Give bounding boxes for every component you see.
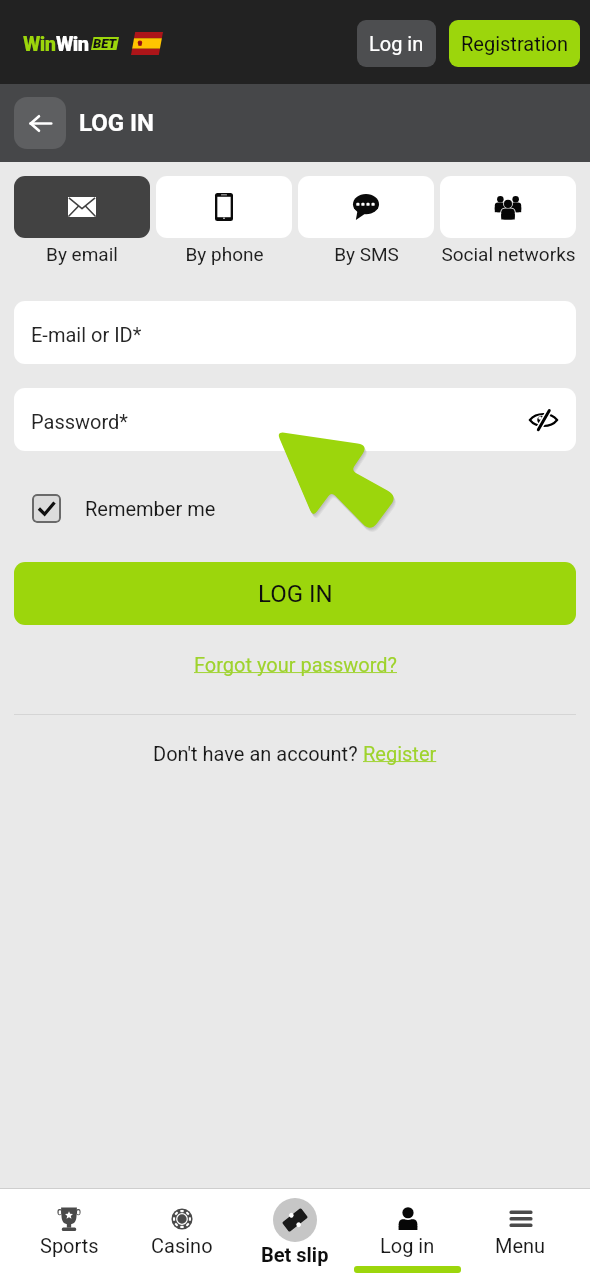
button[interactable]: By phone [156, 176, 292, 265]
button[interactable]: E-mail or ID* [14, 301, 576, 364]
button[interactable]: Forgot your password? [188, 651, 403, 678]
button[interactable]: Password* [14, 388, 576, 451]
staticText: LOG IN [79, 109, 155, 137]
staticText: Win [23, 32, 56, 55]
staticText: Sports [40, 1234, 99, 1257]
button[interactable]: By SMS [298, 176, 434, 265]
staticText: Casino [151, 1234, 213, 1257]
staticText: BET [93, 36, 117, 51]
staticText: Forgot your password? [194, 653, 397, 676]
staticText: Register [363, 742, 437, 765]
button[interactable]: Menu [464, 1189, 577, 1280]
button[interactable]: Log in [351, 1189, 464, 1280]
button[interactable]: By email [14, 176, 150, 265]
button[interactable]: LOG IN [14, 562, 576, 625]
button[interactable]: Show password [526, 403, 560, 437]
staticText: By phone [185, 243, 264, 265]
staticText: Don't have an account? [153, 742, 363, 765]
staticText: Password* [31, 410, 128, 433]
button[interactable]: Log in [357, 20, 436, 67]
staticText: Bet slip [261, 1243, 329, 1266]
staticText: E-mail or ID* [31, 323, 142, 346]
button[interactable]: Back [14, 97, 66, 149]
staticText: Remember me [85, 497, 216, 520]
button[interactable]: Register [363, 742, 437, 765]
staticText: By email [46, 243, 118, 265]
staticText: Win [56, 32, 89, 55]
staticText: Registration [461, 32, 569, 55]
button[interactable]: Casino [125, 1189, 238, 1280]
staticText: LOG IN [258, 580, 333, 608]
staticText: Log in [380, 1234, 435, 1257]
staticText: Social networks [441, 243, 576, 265]
button[interactable]: Sports [13, 1189, 125, 1280]
button[interactable]: Bet slip [238, 1189, 351, 1280]
staticText: Menu [495, 1234, 546, 1257]
staticText: Log in [369, 32, 424, 55]
button[interactable]: Social networks [440, 176, 576, 265]
button[interactable]: Registration [449, 20, 580, 67]
button[interactable]: Remember me [32, 494, 558, 523]
staticText: By SMS [334, 243, 399, 265]
